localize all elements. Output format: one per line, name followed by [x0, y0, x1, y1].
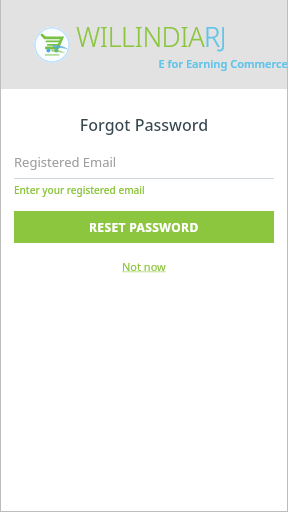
staticText: Not now: [122, 259, 166, 274]
button[interactable]: Not now: [114, 257, 174, 276]
button[interactable]: RESET PASSWORD: [14, 211, 274, 243]
staticText: Registered Email: [14, 153, 117, 171]
other: WillIndiaRJ logo: [34, 27, 70, 63]
button[interactable]: Registered Email: [14, 153, 274, 179]
staticText: E for Earning Commerce: [76, 56, 288, 71]
staticText: RESET PASSWORD: [89, 219, 199, 235]
staticText: Forgot Password: [0, 114, 288, 136]
staticText: Enter your registered email: [14, 183, 274, 197]
staticText: WILLINDIARJ: [76, 18, 227, 55]
